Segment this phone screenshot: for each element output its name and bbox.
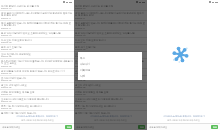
- staticText: 오타 신고합니다 안녕하세요: [75, 52, 105, 55]
- button[interactable]: Send: [138, 125, 145, 129]
- staticText: 전송: [213, 126, 217, 129]
- staticText: 문의사항은 고객센터로 연락주세요: [21, 119, 54, 122]
- staticText: 번역 결과가 이상하게 나옵니다 문장이 길어지면 중간에서 끊어지는 현상 확…: [1, 11, 73, 17]
- staticText: 앱이 실행되지 않습니다 업데이트를 한 이후에 계속 튕기는 현상 로그 첨부…: [1, 21, 73, 27]
- button[interactable]: 번역 결과가 이상하게 나옵니다 문장이 길어지면 중간에서 끊어지는 현상 확…: [74, 11, 147, 20]
- staticText: 2025-01-12: [1, 7, 12, 10]
- button[interactable]: 카메라 번역 정확도 개선을 요청: [74, 90, 147, 96]
- button[interactable]: 오프라인 사전 다운로드가 중간에 중단됩니다: [74, 97, 147, 103]
- staticText: 2025-01-05: [75, 86, 86, 89]
- staticText: 내용을 입력하세요: [149, 126, 168, 129]
- staticText: 2025-01-11: [1, 27, 12, 30]
- button[interactable]: 삭제: [80, 72, 142, 78]
- button[interactable]: 히스토리 저장 기능이 있으면 좋겠습니다 이전에 번역했던 내용을 다시 보고…: [0, 59, 74, 68]
- staticText: 공유 버튼을 누르면 아무런 반응이 없습니다 안드로이드 기기: [75, 69, 140, 72]
- staticText: 2025-01-07: [75, 72, 86, 75]
- button[interactable]: 폰트 크기 조절 기능: [0, 45, 74, 51]
- staticText: 카메라 번역 정확도 개선을 요청: [1, 90, 35, 93]
- staticText: 문의사항은 고객센터로 연락주세요: [167, 119, 200, 122]
- staticText: 로그인이 되지 않습니다: [75, 76, 101, 79]
- staticText: 번역 결과가 이상하게 나옵니다 문장이 길어지면 중간에서 끊어지는 현상 확…: [75, 11, 146, 17]
- staticText: 2025-01-11: [75, 17, 86, 20]
- staticText: 2025-01-02: [75, 107, 86, 110]
- staticText: 이 서비스는 테스트 중입니다 자세히 보기: [163, 115, 205, 118]
- staticText: 2025-01-08: [1, 65, 12, 68]
- staticText: 내보내기: [80, 62, 91, 65]
- staticText: 2025-01-08: [75, 65, 86, 68]
- button[interactable]: 오타 신고합니다 안녕하세요: [74, 52, 147, 58]
- button[interactable]: 앱이 실행되지 않습니다 업데이트를 한 이후에 계속 튕기는 현상 로그 첨부…: [0, 21, 74, 30]
- button[interactable]: 마지막 문장이 사라지는 버그를 수정: [0, 4, 74, 10]
- staticText: 다크 모드 지원 요청드립니다: [75, 38, 106, 41]
- staticText: 히스토리 저장 기능이 있으면 좋겠습니다 이전에 번역했던 내용을 다시 보고…: [1, 59, 73, 65]
- button[interactable]: 마지막 문장이 사라지는 버그를 수정: [74, 4, 147, 10]
- staticText: 위젯 기능 추가 부탁드려요 감사합니다: [1, 104, 42, 107]
- button[interactable]: 다크 모드 지원 요청드립니다: [74, 38, 147, 44]
- staticText: 2025-01-04: [75, 93, 86, 96]
- staticText: 음성 인식이 잘 되지 않아요 조용한 곳에서도 인식률 낮음: [1, 31, 61, 34]
- button[interactable]: 즐겨찾기 동기화가 되지 않습니다: [74, 111, 147, 114]
- staticText: 전송: [140, 126, 144, 129]
- staticText: 내용을 입력하세요: [76, 126, 95, 129]
- staticText: 복사: [80, 56, 86, 59]
- staticText: 2025-01-09: [1, 48, 12, 51]
- staticText: 이름변경: [80, 68, 91, 71]
- button[interactable]: 위젯 기능 추가 부탁드려요 감사합니다: [74, 104, 147, 110]
- staticText: 마지막 문장이 사라지는 버그를 수정: [75, 4, 114, 7]
- button[interactable]: 광고가 너무 많이 나와요: [0, 83, 74, 89]
- staticText: 2025-01-03: [75, 100, 86, 103]
- button[interactable]: 공유 버튼을 누르면 아무런 반응이 없습니다 안드로이드 기기: [74, 69, 147, 75]
- button[interactable]: 즐겨찾기 동기화가 되지 않습니다: [0, 111, 74, 114]
- button[interactable]: Send: [65, 125, 72, 129]
- button[interactable]: 음성 인식이 잘 되지 않아요 조용한 곳에서도 인식률 낮음: [74, 31, 147, 37]
- button[interactable]: 복사: [80, 54, 142, 60]
- staticText: 즐겨찾기 동기화가 되지 않습니다: [75, 111, 111, 114]
- staticText: 이 서비스는 테스트 중입니다 자세히 보기: [90, 115, 132, 118]
- staticText: 2025-01-11: [75, 27, 86, 30]
- button[interactable]: 광고가 너무 많이 나와요: [74, 83, 147, 89]
- staticText: 히스토리 저장 기능이 있으면 좋겠습니다 이전에 번역했던 내용을 다시 보고…: [75, 59, 146, 65]
- staticText: 오프라인 사전 다운로드가 중간에 중단됩니다: [1, 97, 49, 100]
- staticText: 삭제: [80, 74, 86, 77]
- button[interactable]: 음성 인식이 잘 되지 않아요 조용한 곳에서도 인식률 낮음: [0, 31, 74, 37]
- staticText: 2025-01-06: [1, 79, 12, 82]
- staticText: 2025-01-12: [75, 7, 86, 10]
- staticText: 즐겨찾기 동기화가 되지 않습니다: [1, 111, 37, 114]
- staticText: 광고가 너무 많이 나와요: [1, 83, 27, 86]
- staticText: 2025-01-09: [75, 48, 86, 51]
- button[interactable]: 공유 버튼을 누르면 아무런 반응이 없습니다 안드로이드 기기: [0, 69, 74, 75]
- button[interactable]: 위젯 기능 추가 부탁드려요 감사합니다: [0, 104, 74, 110]
- staticText: 위젯 기능 추가 부탁드려요 감사합니다: [75, 104, 116, 107]
- staticText: 2025-01-05: [1, 86, 12, 89]
- staticText: 2025-01-04: [1, 93, 12, 96]
- staticText: 2025-01-09: [1, 41, 12, 44]
- button[interactable]: 로그인이 되지 않습니다: [0, 76, 74, 82]
- button[interactable]: 앱이 실행되지 않습니다 업데이트를 한 이후에 계속 튕기는 현상 로그 첨부…: [74, 21, 147, 30]
- staticText: 폰트 크기 조절 기능: [1, 45, 22, 48]
- staticText: 2025-01-09: [75, 41, 86, 44]
- staticText: 2025-01-08: [75, 55, 86, 58]
- staticText: 마지막 문장이 사라지는 버그를 수정: [1, 4, 40, 7]
- staticText: 폰트 크기 조절 기능: [75, 45, 96, 48]
- staticText: 오타 신고합니다 안녕하세요: [1, 52, 31, 55]
- button[interactable]: 번역 결과가 이상하게 나옵니다 문장이 길어지면 중간에서 끊어지는 현상 확…: [0, 11, 74, 20]
- staticText: 오프라인 사전 다운로드가 중간에 중단됩니다: [75, 97, 123, 100]
- staticText: 다크 모드 지원 요청드립니다: [1, 38, 32, 41]
- button[interactable]: 이름변경: [80, 66, 142, 72]
- button[interactable]: 오프라인 사전 다운로드가 중간에 중단됩니다: [0, 97, 74, 103]
- button[interactable]: Send: [211, 125, 218, 129]
- button[interactable]: 히스토리 저장 기능이 있으면 좋겠습니다 이전에 번역했던 내용을 다시 보고…: [74, 59, 147, 68]
- staticText: 카메라 번역 정확도 개선을 요청: [75, 90, 109, 93]
- staticText: 문의사항은 고객센터로 연락주세요: [94, 119, 127, 122]
- staticText: 2025-01-11: [1, 17, 12, 20]
- button[interactable]: 폰트 크기 조절 기능: [74, 45, 147, 51]
- button[interactable]: 오타 신고합니다 안녕하세요: [0, 52, 74, 58]
- button[interactable]: 카메라 번역 정확도 개선을 요청: [0, 90, 74, 96]
- staticText: 2025-01-10: [75, 34, 86, 37]
- button[interactable]: 다크 모드 지원 요청드립니다: [0, 38, 74, 44]
- staticText: 이 서비스는 테스트 중입니다 자세히 보기: [16, 115, 58, 118]
- button[interactable]: 내보내기: [80, 60, 142, 66]
- button[interactable]: 로그인이 되지 않습니다: [74, 76, 147, 82]
- staticText: 2025-01-07: [1, 72, 12, 75]
- staticText: 공유 버튼을 누르면 아무런 반응이 없습니다 안드로이드 기기: [1, 69, 66, 72]
